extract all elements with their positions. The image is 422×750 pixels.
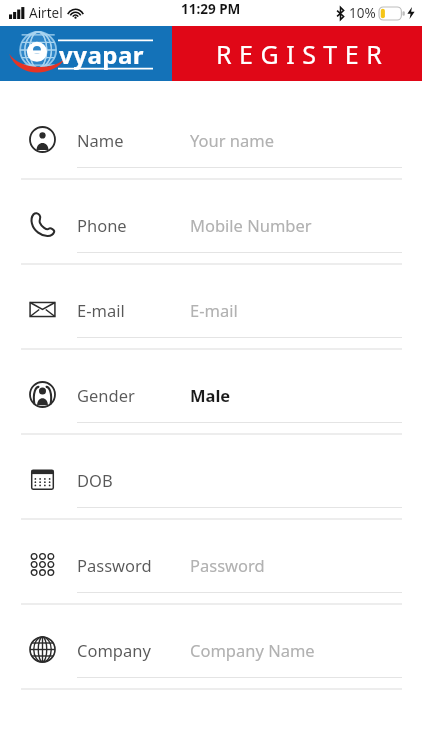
button[interactable]: E-mail	[0, 282, 422, 367]
button[interactable]: Gender	[0, 367, 422, 452]
staticText: E-mail	[190, 299, 238, 321]
staticText: Airtel	[29, 4, 63, 22]
button[interactable]: Phone	[0, 197, 422, 282]
button[interactable]: Name	[0, 112, 422, 197]
staticText: Name	[77, 129, 124, 151]
staticText: Male	[190, 384, 231, 406]
button[interactable]: e-vyapar logo	[0, 26, 172, 81]
staticText: E-mail	[77, 299, 125, 321]
staticText: vyapar	[59, 38, 145, 71]
staticText: Phone	[77, 214, 127, 236]
button[interactable]: Password	[0, 537, 422, 622]
staticText: Your name	[190, 129, 274, 151]
button[interactable]: DOB	[0, 452, 422, 537]
staticText: Company	[77, 639, 151, 661]
staticText: Mobile Number	[190, 214, 312, 236]
staticText: Password	[77, 554, 152, 576]
staticText: REGISTER	[216, 37, 390, 71]
staticText: DOB	[77, 469, 113, 491]
staticText: Gender	[77, 384, 135, 406]
staticText: 10%	[349, 4, 376, 22]
staticText: Company Name	[190, 639, 315, 661]
button[interactable]: Company	[0, 622, 422, 707]
staticText: Password	[190, 554, 265, 576]
staticText: 11:29 PM	[181, 0, 241, 18]
